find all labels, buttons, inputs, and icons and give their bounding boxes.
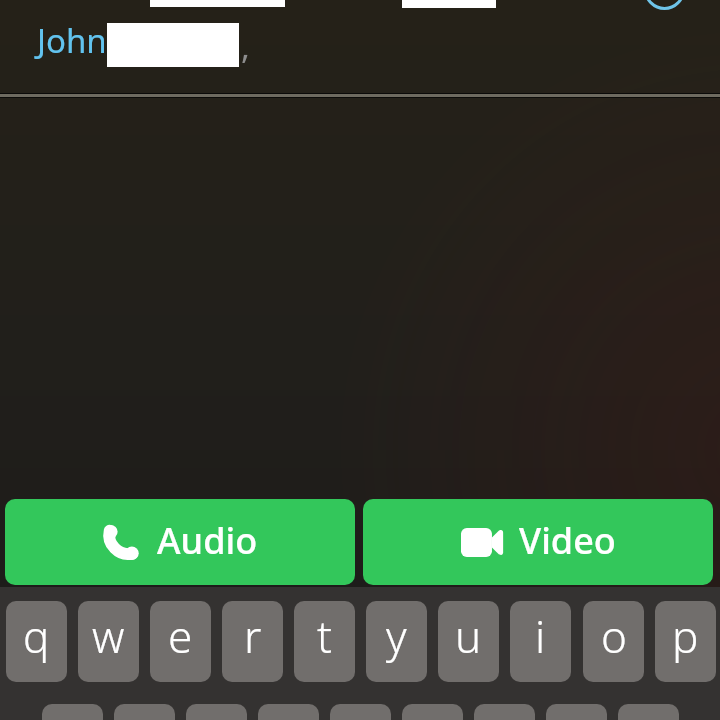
other: Profile <box>644 0 685 10</box>
button[interactable]: f <box>258 704 319 720</box>
staticText: , <box>241 24 250 69</box>
button[interactable]: u <box>438 601 499 682</box>
staticText: t <box>317 606 332 666</box>
button[interactable]: o <box>583 601 644 682</box>
button[interactable]: h <box>402 704 463 720</box>
staticText: p <box>672 606 699 666</box>
button[interactable]: y <box>366 601 427 682</box>
staticText: John <box>37 18 107 63</box>
button[interactable]: i <box>510 601 571 682</box>
button[interactable]: Audio call <box>5 499 355 585</box>
button[interactable]: d <box>186 704 247 720</box>
button[interactable]: a <box>42 704 103 720</box>
staticText: q <box>23 606 50 666</box>
staticText: o <box>601 606 627 666</box>
staticText: w <box>92 606 125 666</box>
button[interactable]: l <box>618 704 679 720</box>
button[interactable]: q <box>6 601 67 682</box>
staticText: r <box>244 606 262 666</box>
staticText: Video <box>519 516 616 565</box>
button[interactable]: Video call <box>363 499 713 585</box>
staticText: u <box>455 606 482 666</box>
button[interactable]: John <box>30 14 252 76</box>
staticText: e <box>168 606 193 666</box>
other: Video call <box>461 528 504 557</box>
button[interactable]: w <box>78 601 139 682</box>
button[interactable]: s <box>114 704 175 720</box>
staticText: i <box>535 606 546 666</box>
button[interactable]: k <box>546 704 607 720</box>
button[interactable]: j <box>474 704 535 720</box>
staticText: y <box>386 606 407 666</box>
button[interactable]: e <box>150 601 211 682</box>
button[interactable]: g <box>330 704 391 720</box>
button[interactable]: r <box>222 601 283 682</box>
button[interactable]: p <box>655 601 716 682</box>
staticText: Audio <box>157 516 258 565</box>
button[interactable]: t <box>294 601 355 682</box>
other: Audio call <box>103 524 140 561</box>
